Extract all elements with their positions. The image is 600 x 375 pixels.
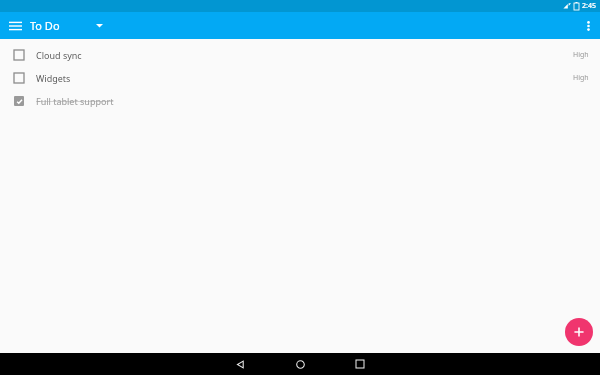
staticText: Cloud sync [36, 49, 82, 61]
staticText: Full tablet support [36, 95, 114, 107]
button[interactable]: To Do [30, 12, 109, 39]
button[interactable]: Task completed [0, 89, 600, 112]
button[interactable]: Mark complete [11, 47, 27, 63]
staticText: 2:45 [582, 1, 596, 11]
staticText: High [573, 50, 589, 60]
button[interactable]: Open navigation drawer [0, 12, 30, 39]
button[interactable]: Back [222, 353, 258, 375]
button[interactable]: Add task [565, 318, 593, 346]
button[interactable]: Task completed [11, 93, 27, 109]
button[interactable]: Mark complete [11, 70, 27, 86]
staticText: Widgets [36, 72, 71, 84]
button[interactable]: Home [282, 353, 318, 375]
staticText: To Do [30, 18, 60, 33]
button[interactable]: More options [576, 12, 600, 39]
button[interactable]: Mark complete [0, 43, 600, 66]
button[interactable]: Recent apps [342, 353, 378, 375]
staticText: High [573, 73, 589, 83]
button[interactable]: Mark complete [0, 66, 600, 89]
